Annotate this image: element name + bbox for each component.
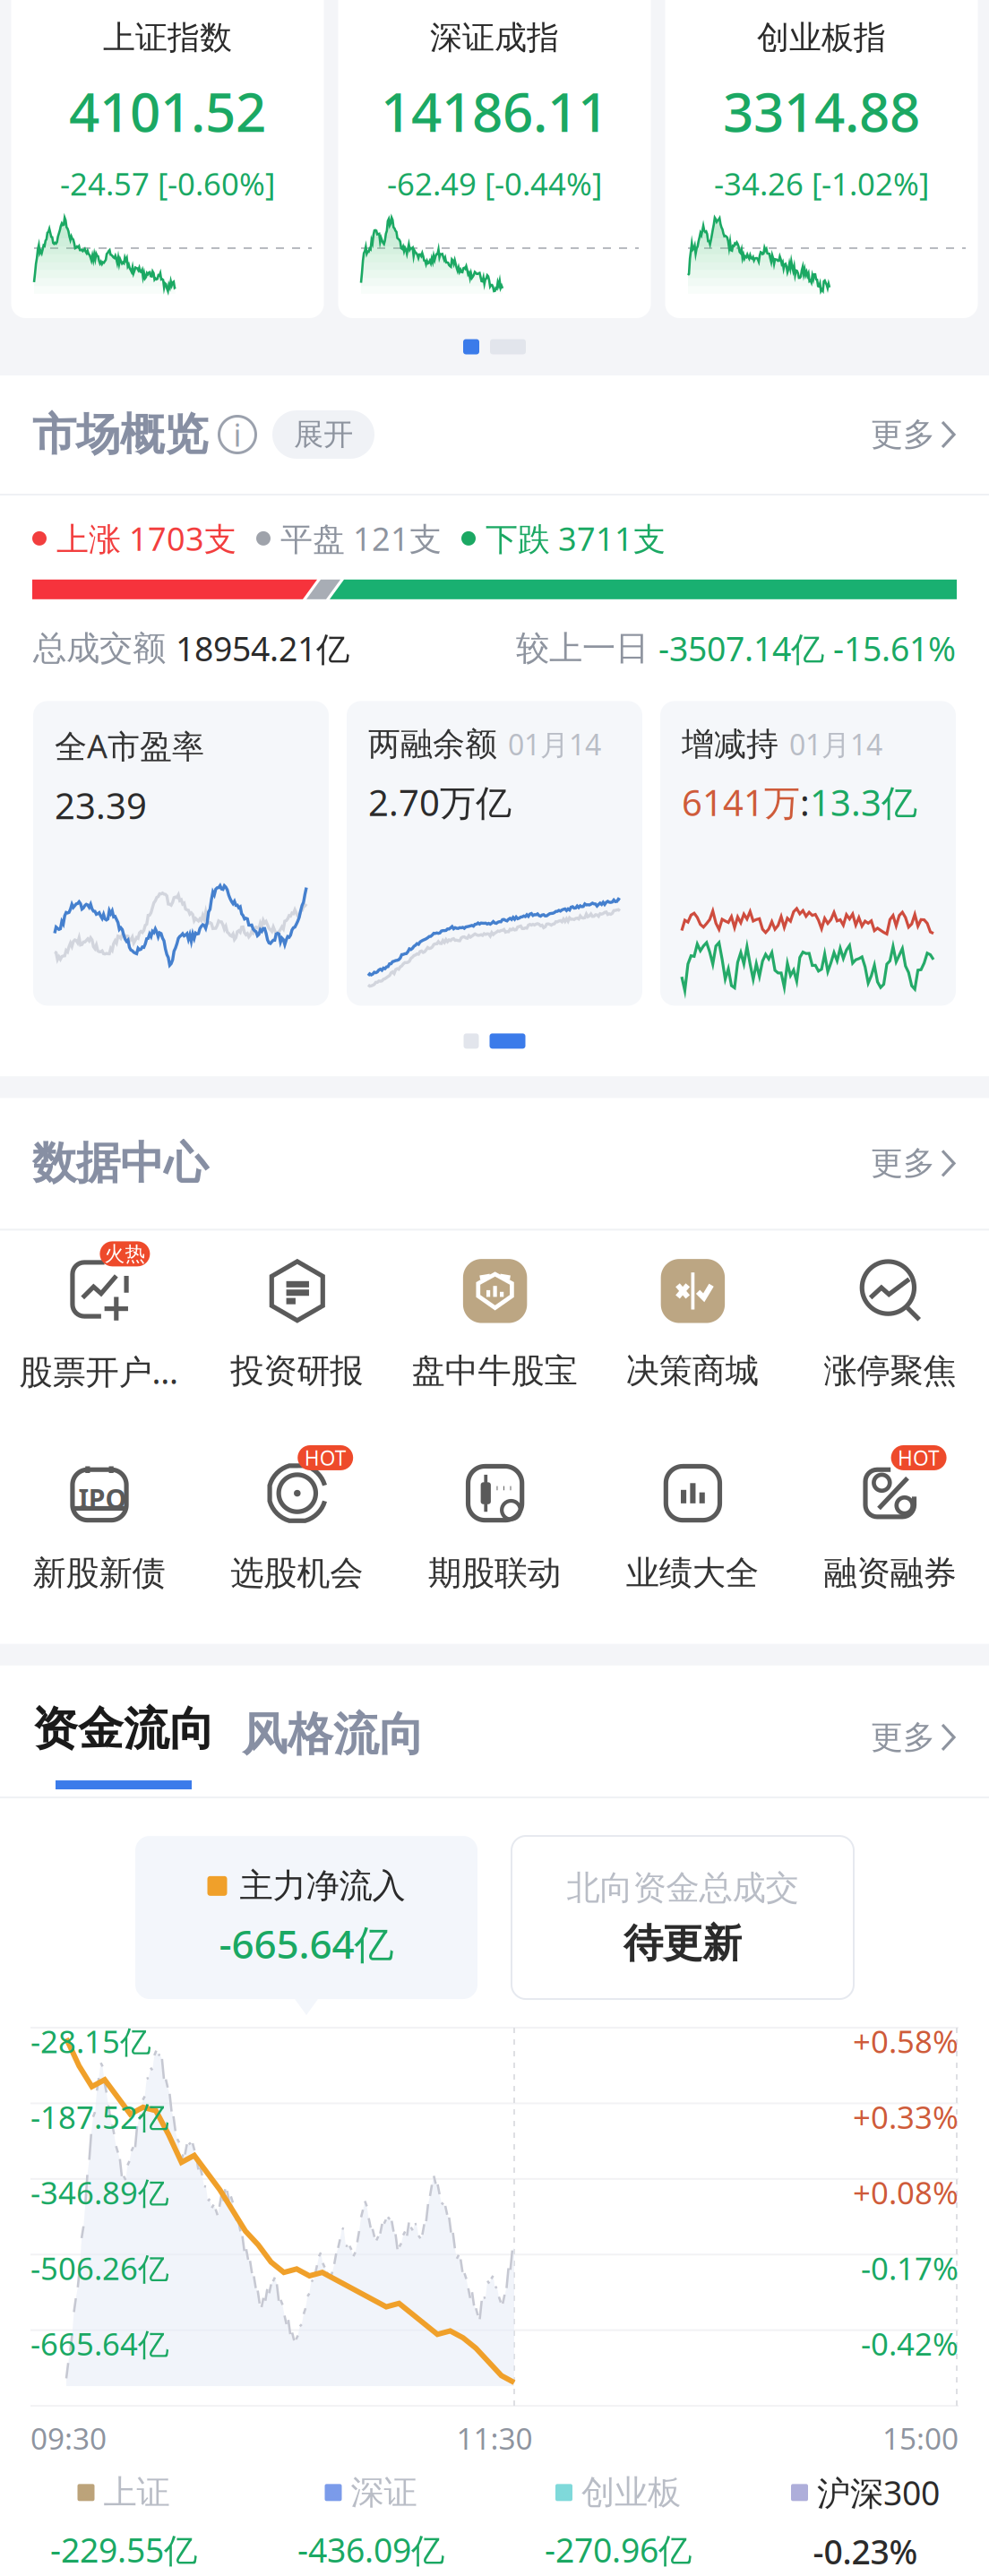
button[interactable]: 风格流向 (215, 1707, 425, 1789)
staticText: 待更新 (623, 1919, 742, 1968)
staticText: IPO (79, 1482, 130, 1520)
staticText: 融资融券 (824, 1553, 956, 1594)
staticText: 上证 (103, 2472, 170, 2513)
button[interactable]: 沪深300 (742, 2470, 989, 2573)
staticText: 2.70万亿 (368, 778, 512, 826)
button[interactable]: 增减持 (660, 701, 956, 1006)
button[interactable]: 更多 (853, 1708, 957, 1766)
staticText: 18954.21亿 (176, 626, 349, 671)
button[interactable]: 期股联动 (396, 1445, 593, 1594)
staticText: 上涨 1703支 (47, 517, 236, 560)
staticText: 较上一日 (516, 628, 658, 669)
staticText: -665.64亿 (30, 2323, 169, 2364)
staticText: 23.39 (55, 781, 147, 829)
staticText: 更多 (871, 1144, 935, 1183)
staticText: 14186.11 (381, 75, 608, 147)
staticText: 11:30 (456, 2418, 533, 2458)
staticText: 风格流向 (242, 1707, 425, 1762)
button[interactable]: 北向资金总成交 (512, 1836, 854, 1999)
staticText: 15:00 (882, 2418, 959, 2458)
staticText: -24.57 [-0.60%] (60, 163, 275, 204)
button[interactable]: 上证 (0, 2472, 247, 2572)
staticText: 上证指数 (103, 18, 232, 58)
staticText: 市场概览 (32, 407, 208, 462)
button[interactable]: 全A市盈率 (33, 701, 329, 1006)
staticText: -62.49 [-0.44%] (387, 163, 602, 204)
staticText: 选股机会 (230, 1553, 363, 1594)
button[interactable]: 展开 (272, 410, 374, 459)
staticText: 投资研报 (230, 1350, 363, 1392)
staticText: HOT (898, 1444, 940, 1471)
staticText: 主力净流入 (240, 1865, 405, 1907)
staticText: 全A市盈率 (55, 724, 204, 767)
staticText: -665.64亿 (219, 1917, 394, 1970)
staticText: 增减持 (682, 724, 778, 764)
button[interactable]: HOT (791, 1445, 989, 1594)
staticText: 01月14 (508, 725, 601, 763)
button[interactable]: 投资研报 (198, 1243, 396, 1392)
staticText: 平盘 121支 (271, 517, 442, 560)
button[interactable]: 深证 (247, 2472, 494, 2572)
staticText: 深证 (351, 2472, 417, 2513)
staticText: 展开 (294, 416, 353, 453)
staticText: -346.89亿 (30, 2172, 169, 2213)
button[interactable]: 火热 (0, 1241, 198, 1393)
staticText: 4101.52 (69, 75, 266, 147)
staticText: 资金流向 (32, 1701, 215, 1757)
staticText: -34.26 [-1.02%] (714, 163, 929, 204)
staticText: 决策商城 (626, 1350, 759, 1392)
button[interactable]: 业绩大全 (593, 1445, 791, 1594)
staticText: 股票开户… (19, 1349, 179, 1393)
staticText: -506.26亿 (30, 2247, 169, 2289)
staticText: 火热 (104, 1241, 145, 1266)
button[interactable]: 决策商城 (593, 1243, 791, 1392)
button[interactable]: 说明 (208, 405, 267, 464)
staticText: +0.58% (853, 2020, 959, 2062)
staticText: 总成交额 (33, 628, 176, 669)
staticText: 更多 (871, 1717, 935, 1757)
staticText: 沪深300 (817, 2470, 940, 2515)
staticText: -28.15亿 (30, 2020, 151, 2062)
staticText: -187.52亿 (30, 2096, 169, 2137)
staticText: -0.17% (861, 2247, 959, 2289)
button[interactable]: 更多 (853, 1135, 957, 1192)
staticText: : (800, 778, 810, 826)
staticText: 期股联动 (428, 1553, 561, 1594)
staticText: -0.23% (813, 2529, 918, 2573)
staticText: -229.55亿 (50, 2527, 197, 2572)
button[interactable]: 涨停聚焦 (791, 1243, 989, 1392)
staticText: 6141万 (682, 778, 800, 826)
staticText: 创业板指 (757, 18, 886, 58)
button[interactable]: 盘中牛股宝 (396, 1243, 593, 1392)
staticText: 01月14 (789, 725, 882, 763)
staticText: -270.96亿 (545, 2527, 692, 2572)
button[interactable]: 创业板 (494, 2472, 742, 2572)
button[interactable]: 更多 (853, 406, 957, 463)
staticText: HOT (304, 1444, 346, 1471)
button[interactable]: 上证指数 (11, 0, 324, 318)
button[interactable]: 深证成指 (338, 0, 651, 318)
staticText: 下跌 3711支 (476, 517, 666, 560)
staticText: 业绩大全 (626, 1553, 759, 1594)
staticText: +0.33% (853, 2096, 959, 2137)
button[interactable]: 两融余额 (347, 701, 642, 1006)
staticText: +0.08% (853, 2172, 959, 2213)
staticText: 创业板 (581, 2472, 681, 2513)
staticText: -3507.14亿 -15.61% (658, 626, 956, 671)
button[interactable]: 主力净流入 (135, 1836, 477, 1999)
staticText: i (233, 414, 241, 455)
staticText: 两融余额 (368, 724, 497, 764)
staticText: 3314.88 (723, 75, 920, 147)
staticText: 更多 (871, 415, 935, 454)
staticText: 盘中牛股宝 (412, 1350, 577, 1392)
staticText: 09:30 (30, 2418, 107, 2458)
button[interactable]: 创业板指 (665, 0, 978, 318)
button[interactable]: IPO (0, 1445, 198, 1594)
staticText: 数据中心 (32, 1136, 208, 1191)
button[interactable]: HOT (198, 1445, 396, 1594)
staticText: -0.42% (861, 2323, 959, 2364)
staticText: 深证成指 (430, 18, 559, 58)
staticText: 13.3亿 (810, 778, 917, 826)
staticText: 北向资金总成交 (567, 1867, 799, 1908)
staticText: 涨停聚焦 (824, 1350, 956, 1392)
